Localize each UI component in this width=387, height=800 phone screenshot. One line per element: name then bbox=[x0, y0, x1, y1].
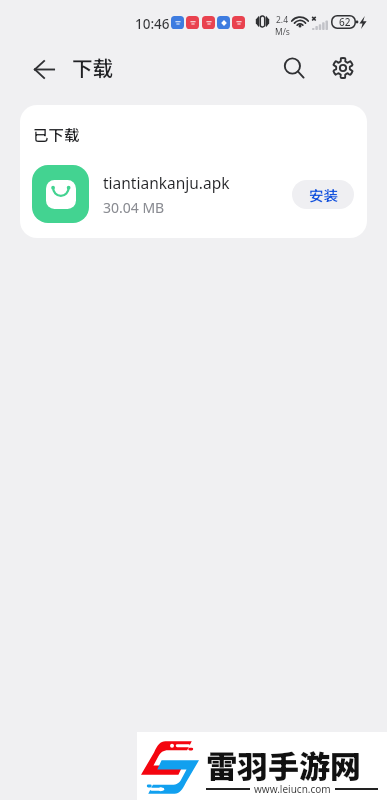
staticText: 下载 bbox=[72, 52, 113, 82]
staticText: 2.4 bbox=[276, 14, 289, 26]
staticText: 10:46 bbox=[135, 15, 170, 33]
staticText: 已下载 bbox=[33, 123, 80, 145]
staticText: www.leiucn.com bbox=[254, 782, 331, 796]
button[interactable]: 安装 bbox=[292, 180, 354, 209]
staticText: tiantiankanju.apk bbox=[103, 172, 230, 193]
staticText: 雷羽手游网 bbox=[206, 742, 361, 787]
staticText: 安装 bbox=[309, 184, 338, 205]
button[interactable]: Search bbox=[277, 51, 311, 85]
staticText: 30.04 MB bbox=[103, 198, 165, 217]
staticText: M/s bbox=[275, 26, 290, 38]
button[interactable]: Settings bbox=[326, 51, 360, 85]
staticText: 62 bbox=[339, 15, 351, 29]
button[interactable]: Back bbox=[28, 53, 60, 85]
